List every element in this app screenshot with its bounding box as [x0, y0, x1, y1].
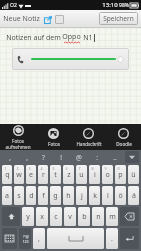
staticText: 123	[22, 239, 29, 244]
button[interactable]: m	[106, 207, 118, 226]
button[interactable]: Taste	[19, 228, 31, 249]
staticText: Doodle	[116, 141, 132, 147]
button[interactable]: :	[88, 150, 106, 164]
staticText: .	[111, 234, 113, 244]
button[interactable]: x	[36, 207, 48, 226]
staticText: ?	[42, 153, 45, 162]
button[interactable]: g	[50, 186, 61, 205]
button[interactable]: b	[78, 207, 90, 226]
staticText: @	[76, 153, 82, 162]
staticText: c	[54, 212, 58, 222]
staticText: i	[94, 170, 96, 180]
button[interactable]: Fotos	[36, 124, 71, 150]
button[interactable]: h	[63, 186, 74, 205]
button[interactable]: j	[76, 186, 87, 205]
staticText: ü	[131, 170, 136, 180]
button[interactable]: ..	[106, 150, 124, 164]
staticText: ,	[38, 234, 40, 244]
staticText: n	[96, 212, 101, 222]
button[interactable]: r	[38, 165, 48, 184]
button[interactable]: Handschrift	[71, 124, 106, 150]
staticText: r	[42, 170, 45, 180]
staticText: u	[79, 170, 84, 180]
button[interactable]: Taste	[120, 228, 139, 249]
button[interactable]: ,	[33, 228, 45, 249]
button[interactable]: ö	[115, 186, 126, 205]
button[interactable]: n	[92, 207, 104, 226]
staticText: l	[107, 191, 109, 201]
staticText: x	[40, 212, 44, 222]
staticText: 13:10	[102, 1, 118, 9]
staticText: Notizen auf dem	[5, 33, 62, 43]
staticText: y	[26, 212, 30, 222]
button[interactable]: !	[52, 150, 70, 164]
button[interactable]: ä	[128, 186, 139, 205]
staticText: Oppo	[62, 32, 81, 42]
button[interactable]: ?	[35, 150, 52, 164]
button[interactable]: z	[63, 165, 74, 184]
staticText: 7	[78, 166, 81, 171]
staticText: 1	[4, 166, 7, 171]
staticText: !	[60, 153, 62, 162]
button[interactable]: Speichern	[99, 12, 138, 25]
button[interactable]: .	[106, 228, 118, 249]
staticText: N1	[81, 33, 93, 43]
button[interactable]: c	[50, 207, 62, 226]
button[interactable]	[12, 48, 129, 70]
staticText: h	[66, 191, 71, 201]
staticText: d	[29, 191, 34, 201]
staticText: g	[53, 191, 58, 201]
staticText: ..	[113, 153, 117, 162]
button[interactable]: a	[2, 186, 12, 205]
button[interactable]: o	[102, 165, 113, 184]
staticText: 8	[91, 166, 94, 171]
button[interactable]: p	[115, 165, 126, 184]
staticText: o	[105, 170, 110, 180]
staticText: 9	[104, 166, 107, 171]
button[interactable]: i	[89, 165, 100, 184]
button[interactable]: f	[38, 186, 48, 205]
button[interactable]: s	[14, 186, 24, 205]
staticText: 4	[40, 166, 43, 171]
staticText: Fotos aufnehmen	[0, 138, 36, 150]
staticText: ä	[132, 191, 136, 201]
button[interactable]: u	[76, 165, 87, 184]
button[interactable]: ,	[1, 150, 18, 164]
staticText: Speichern	[103, 14, 134, 23]
button[interactable]: Doodle	[106, 124, 141, 150]
button[interactable]: Option	[55, 15, 64, 24]
staticText: Handschrift	[76, 141, 102, 147]
staticText: 6	[65, 166, 68, 171]
button[interactable]: Taste	[120, 207, 139, 226]
staticText: O2	[10, 2, 17, 9]
button[interactable]: v	[64, 207, 76, 226]
button[interactable]: k	[89, 186, 100, 205]
button[interactable]: ,	[18, 150, 35, 164]
button[interactable]: Taste	[2, 207, 20, 226]
staticText: 5	[52, 166, 55, 171]
button[interactable]: t	[50, 165, 61, 184]
button[interactable]: q	[2, 165, 12, 184]
button[interactable]: @	[70, 150, 88, 164]
button[interactable]: d	[26, 186, 36, 205]
button[interactable]: ü	[128, 165, 139, 184]
staticText: q	[5, 170, 10, 180]
button[interactable]: e	[26, 165, 36, 184]
staticText: ,	[9, 153, 11, 162]
staticText: Neue Notiz	[3, 14, 40, 24]
staticText: e	[29, 170, 33, 180]
staticText: t	[54, 170, 57, 180]
staticText: 3	[28, 166, 31, 171]
button[interactable]: l	[102, 186, 113, 205]
staticText: v	[68, 212, 72, 222]
button[interactable]: Taste	[2, 228, 17, 249]
button[interactable]	[47, 228, 104, 249]
button[interactable]: Mehr	[125, 151, 139, 163]
staticText: p	[118, 170, 123, 180]
button[interactable]: Fotos aufnehmen	[0, 124, 36, 150]
staticText: 2	[16, 166, 19, 171]
button[interactable]: y	[22, 207, 34, 226]
staticText: Fotos	[48, 141, 60, 147]
button[interactable]: Teilen	[43, 15, 52, 24]
button[interactable]: w	[14, 165, 24, 184]
